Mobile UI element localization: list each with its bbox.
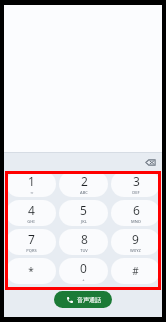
staticText: GHI	[27, 219, 35, 224]
button[interactable]: 8	[59, 229, 108, 255]
staticText: 7	[28, 231, 35, 247]
button[interactable]: 9	[111, 229, 160, 255]
staticText: 3	[133, 173, 140, 189]
staticText: 4	[28, 202, 35, 218]
button[interactable]: 7	[6, 229, 56, 255]
button[interactable]: #	[111, 258, 160, 284]
staticText: DEF	[132, 190, 140, 195]
staticText: PQRS	[26, 248, 37, 253]
button[interactable]: 1	[6, 171, 56, 197]
button[interactable]: 6	[111, 200, 160, 226]
staticText: *	[28, 264, 34, 278]
button[interactable]: 4	[6, 200, 56, 226]
staticText: WXYZ	[130, 248, 141, 253]
staticText: 1	[28, 173, 35, 189]
staticText: 5	[80, 202, 87, 218]
staticText: #	[132, 264, 139, 278]
staticText: JKL	[81, 219, 87, 224]
staticText: ∞	[30, 190, 34, 195]
button[interactable]: 5	[59, 200, 108, 226]
staticText: 6	[133, 202, 140, 218]
button[interactable]: 3	[111, 171, 160, 197]
button[interactable]: *	[6, 258, 56, 284]
staticText: 9	[132, 231, 139, 247]
staticText: 0	[80, 260, 87, 276]
staticText: ABC	[80, 190, 88, 195]
staticText: 2	[81, 173, 88, 189]
staticText: 8	[81, 231, 88, 247]
staticText: 音声通話	[77, 296, 101, 304]
staticText: +	[82, 277, 85, 282]
staticText: TUV	[80, 248, 88, 253]
button[interactable]: 2	[59, 171, 108, 197]
button[interactable]: 0	[59, 258, 108, 284]
staticText: MNO	[131, 219, 141, 224]
button[interactable]: Backspace	[143, 155, 157, 169]
button[interactable]: 音声通話	[54, 291, 112, 308]
